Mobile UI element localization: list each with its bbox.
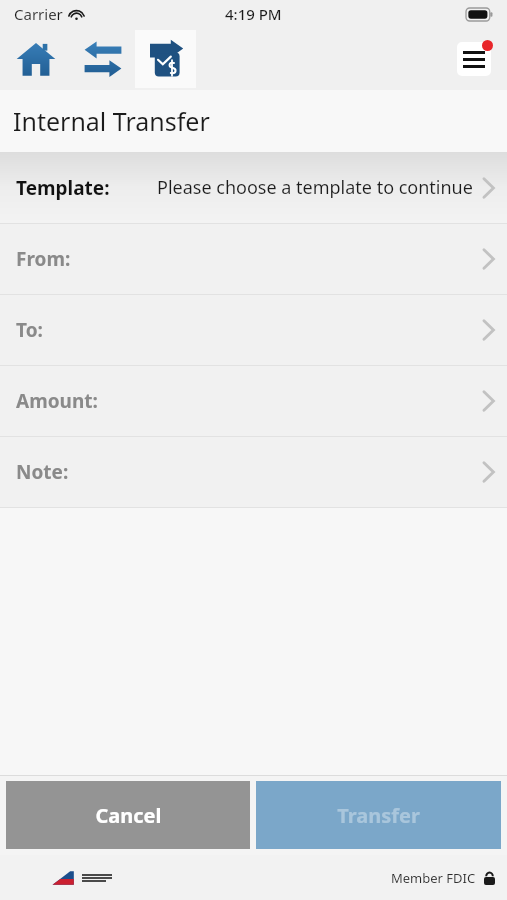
- staticText: Member FDIC: [391, 869, 476, 887]
- button[interactable]: Internal Transfer: [135, 28, 196, 90]
- button[interactable]: Template:: [0, 152, 507, 223]
- staticText: Carrier: [14, 4, 63, 24]
- button[interactable]: Amount:: [0, 366, 507, 436]
- button[interactable]: Cancel: [6, 781, 250, 849]
- staticText: To:: [16, 317, 43, 343]
- staticText: Please choose a template to continue: [157, 175, 473, 200]
- staticText: Transfer: [337, 802, 420, 829]
- button[interactable]: Note:: [0, 437, 507, 507]
- staticText: Cancel: [95, 802, 162, 829]
- staticText: Note:: [16, 459, 69, 485]
- button[interactable]: Transfer: [256, 781, 501, 849]
- button[interactable]: Transfers: [71, 28, 135, 90]
- staticText: Template:: [16, 175, 110, 201]
- staticText: Amount:: [16, 388, 98, 414]
- staticText: Internal Transfer: [13, 104, 210, 138]
- button[interactable]: Home: [0, 28, 71, 90]
- button[interactable]: Menu: [453, 38, 495, 80]
- button[interactable]: From:: [0, 224, 507, 294]
- button[interactable]: To:: [0, 295, 507, 365]
- staticText: 4:19 PM: [225, 4, 282, 24]
- staticText: From:: [16, 246, 71, 272]
